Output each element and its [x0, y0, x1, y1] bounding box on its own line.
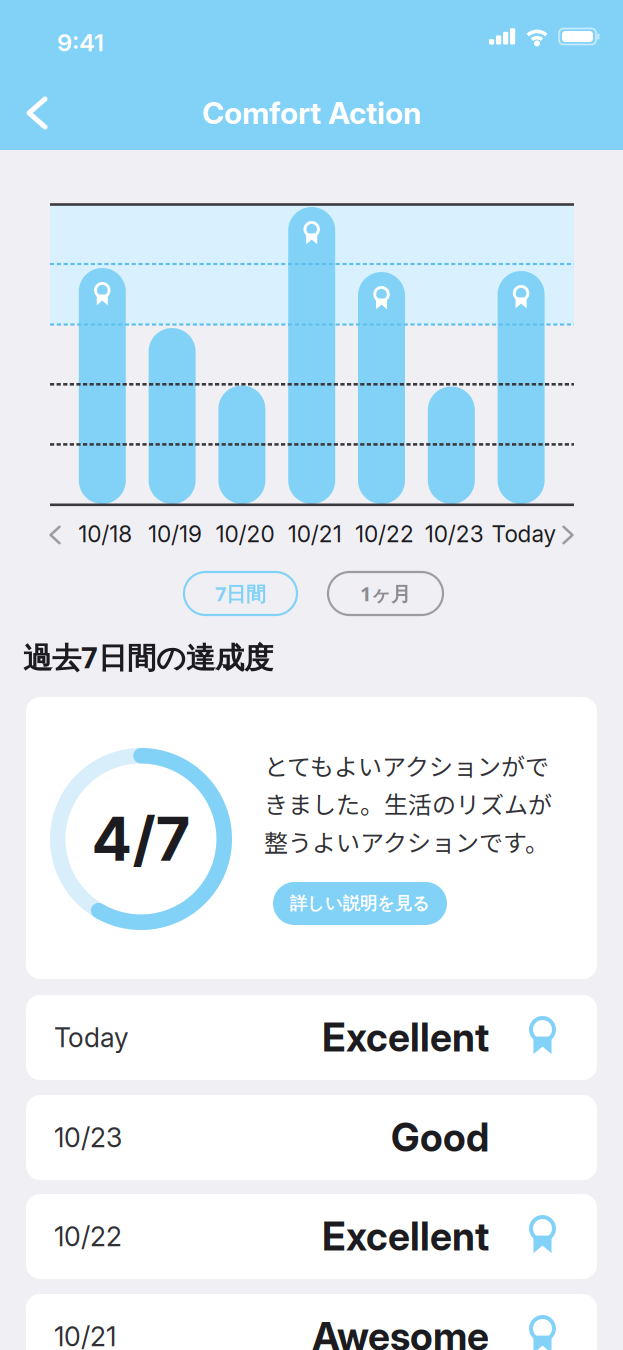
- staticText: 9:41: [57, 28, 104, 57]
- button[interactable]: 10/23: [26, 1095, 597, 1180]
- staticText: Excellent: [322, 1213, 489, 1260]
- staticText: とてもよいアクションがで: [264, 748, 549, 783]
- staticText: 10/23: [54, 1121, 122, 1154]
- button[interactable]: Previous week: [40, 520, 70, 550]
- button[interactable]: Back: [8, 82, 66, 144]
- staticText: 1ヶ月: [360, 580, 411, 607]
- staticText: Today: [54, 1021, 129, 1054]
- button[interactable]: 7日間: [184, 572, 297, 615]
- button[interactable]: 1ヶ月: [328, 572, 443, 615]
- staticText: Today: [492, 520, 557, 548]
- button[interactable]: 詳しい説明を見る: [273, 882, 447, 925]
- staticText: 10/23: [425, 520, 484, 548]
- staticText: 10/20: [215, 520, 274, 548]
- staticText: きました。生活のリズムが: [264, 786, 552, 821]
- staticText: 詳しい説明を見る: [290, 893, 430, 914]
- staticText: Good: [391, 1114, 489, 1161]
- staticText: 10/21: [54, 1320, 116, 1350]
- staticText: 10/22: [54, 1220, 122, 1253]
- staticText: 10/19: [148, 520, 202, 548]
- button[interactable]: 10/21: [26, 1294, 597, 1350]
- button[interactable]: Today: [26, 995, 597, 1080]
- button[interactable]: 10/22: [26, 1194, 597, 1279]
- staticText: Excellent: [322, 1014, 489, 1061]
- staticText: 4/7: [91, 803, 190, 875]
- staticText: 整うよいアクションです。: [264, 824, 549, 859]
- staticText: 10/21: [288, 520, 342, 548]
- staticText: Comfort Action: [202, 95, 421, 131]
- button[interactable]: Next week: [553, 520, 583, 550]
- staticText: 7日間: [215, 580, 266, 607]
- staticText: 10/22: [355, 520, 414, 548]
- staticText: Awesome: [312, 1313, 489, 1350]
- staticText: 過去7日間の達成度: [23, 637, 273, 677]
- staticText: 10/18: [78, 520, 132, 548]
